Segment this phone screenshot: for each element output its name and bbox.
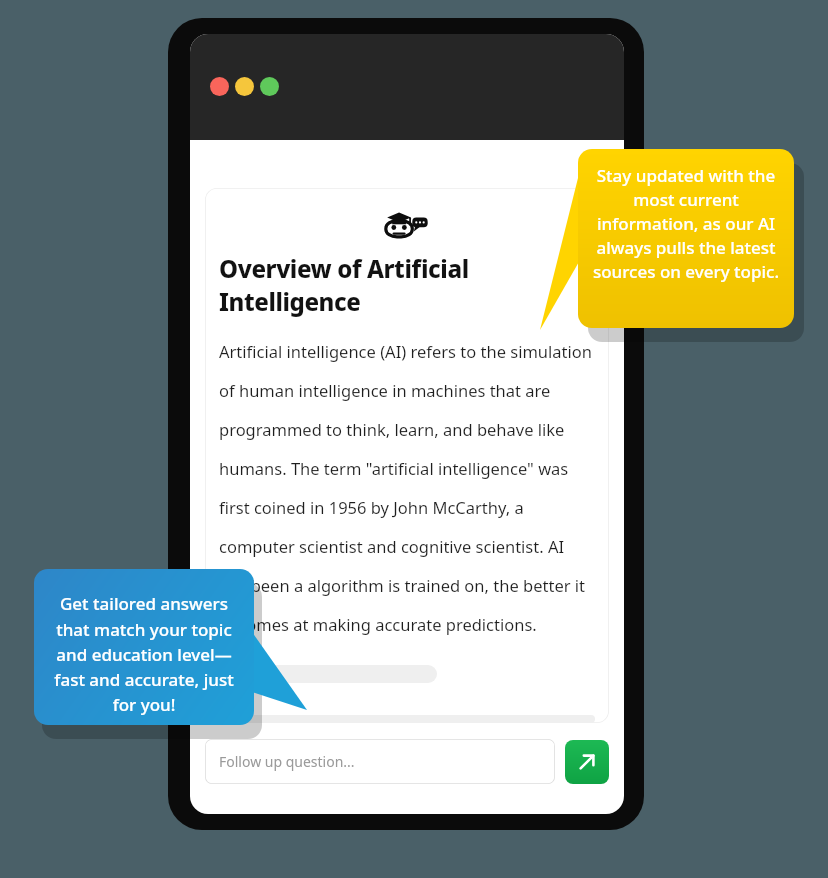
staticText: Get tailored answers that match your top… xyxy=(46,592,242,716)
staticText: Artificial intelligence (AI) refers to t… xyxy=(219,340,595,635)
staticText: Overview of Artificial Intelligence xyxy=(219,252,595,318)
staticText: Stay updated with the most current infor… xyxy=(586,164,786,283)
button[interactable]: Send question xyxy=(565,740,609,784)
staticText: Follow up question... xyxy=(219,752,355,771)
button[interactable]: Overview of Artificial Intelligence xyxy=(205,188,609,723)
button[interactable]: Follow up question... xyxy=(205,739,555,784)
